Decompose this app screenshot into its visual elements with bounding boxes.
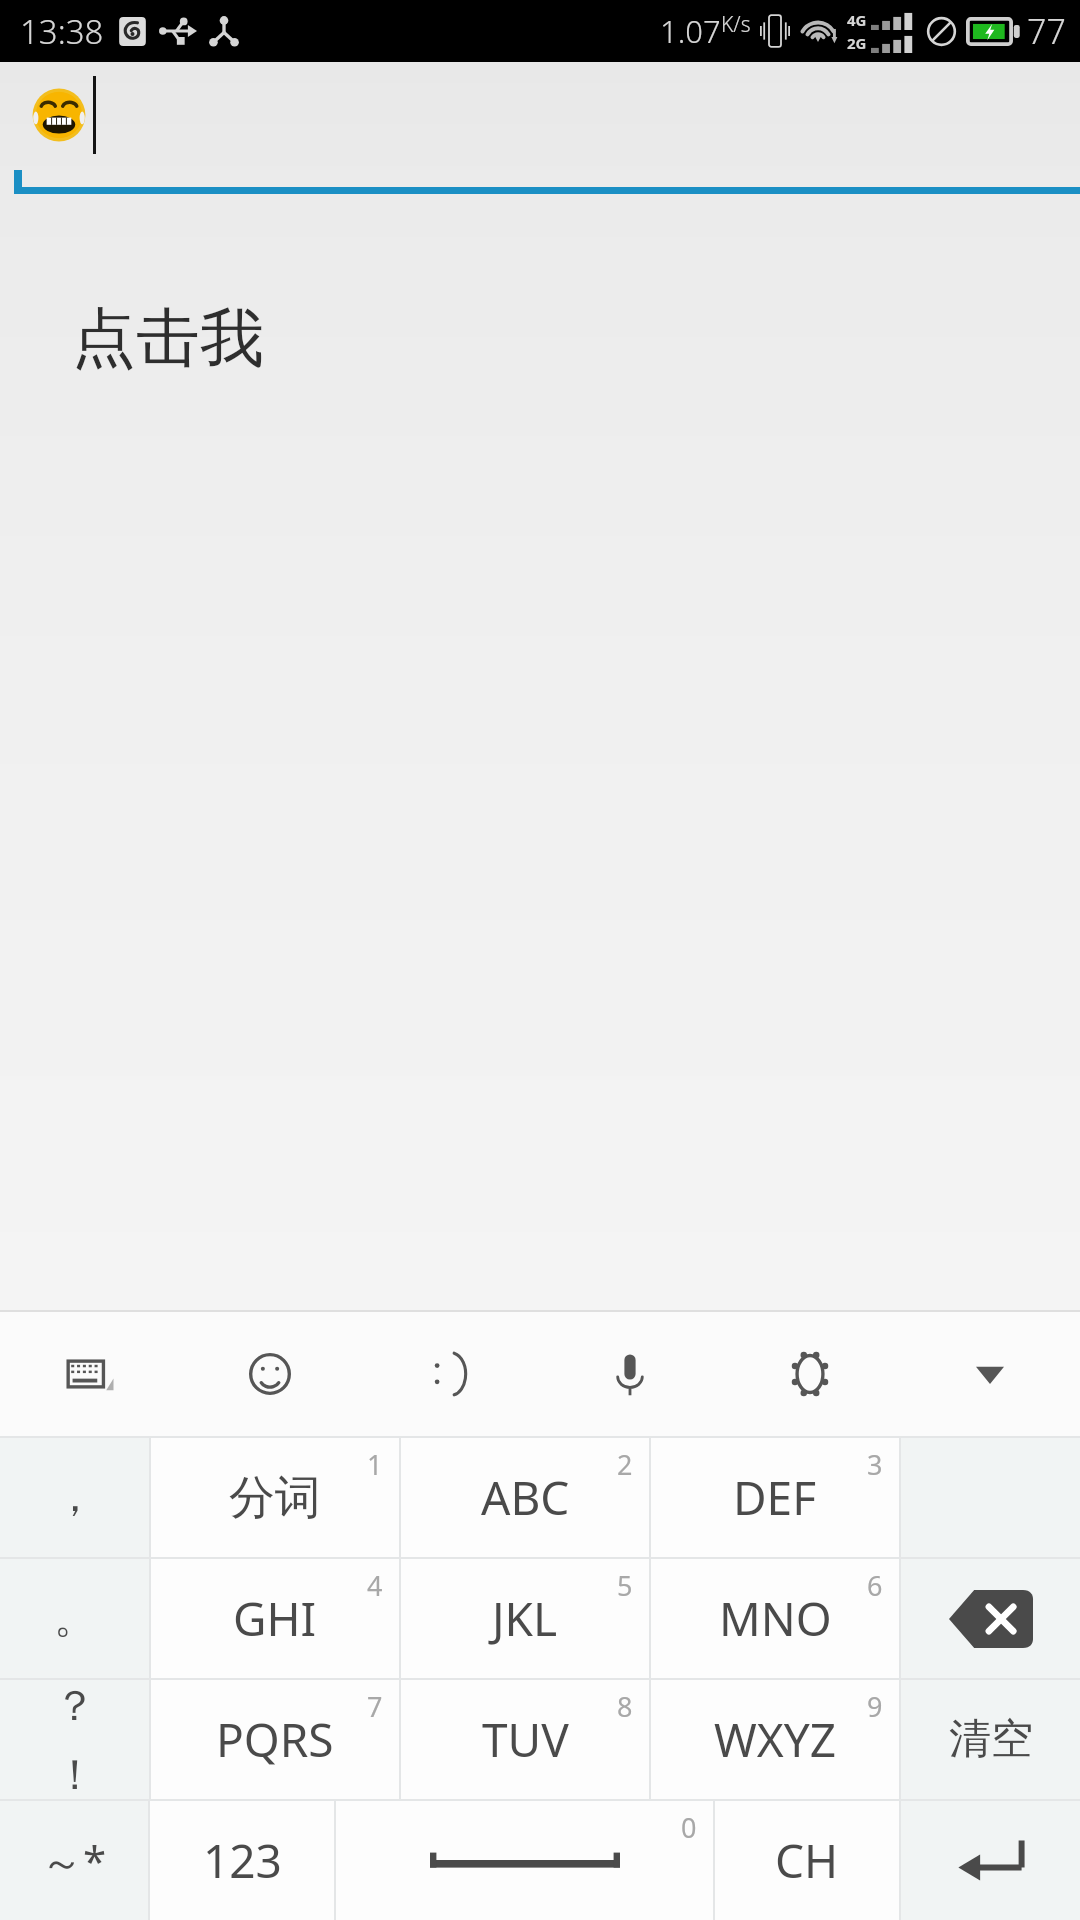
button[interactable]: Space — [336, 1801, 713, 1920]
staticText: GHI — [233, 1587, 317, 1650]
staticText: 1 — [367, 1446, 383, 1483]
button[interactable]: MNO — [651, 1559, 899, 1678]
staticText: PQRS — [216, 1708, 334, 1771]
staticText: 5 — [617, 1567, 633, 1604]
staticText: ， — [54, 1471, 96, 1524]
staticText: ～* — [41, 1832, 107, 1889]
staticText: DEF — [733, 1466, 817, 1529]
staticText: K/s — [721, 10, 751, 39]
staticText: 3 — [867, 1446, 883, 1483]
staticText: WXYZ — [714, 1708, 837, 1771]
button[interactable]: Emoji — [180, 1312, 360, 1436]
button[interactable] — [0, 62, 1080, 168]
staticText: CH — [775, 1829, 839, 1892]
button[interactable]: PQRS — [151, 1680, 399, 1799]
staticText: 13:38 — [20, 9, 104, 54]
staticText: 8 — [617, 1688, 633, 1725]
button[interactable]: Voice input — [540, 1312, 720, 1436]
button[interactable]: Enter — [901, 1801, 1080, 1920]
button[interactable]: Backspace — [901, 1559, 1080, 1678]
staticText: MNO — [719, 1587, 832, 1650]
button[interactable]: Hide keyboard — [900, 1312, 1080, 1436]
staticText: 0 — [681, 1809, 697, 1846]
staticText: 2G — [847, 33, 867, 53]
button[interactable]: Keyboard layout — [0, 1312, 180, 1436]
staticText: 分词 — [229, 1469, 321, 1527]
button[interactable]: WXYZ — [651, 1680, 899, 1799]
staticText: 9 — [867, 1688, 883, 1725]
button[interactable]: 。 — [0, 1559, 149, 1678]
button[interactable]: TUV — [401, 1680, 649, 1799]
staticText: ？ — [54, 1680, 96, 1733]
button[interactable]: CH — [715, 1801, 899, 1920]
button[interactable]: ABC — [401, 1438, 649, 1557]
staticText: 6 — [867, 1567, 883, 1604]
button[interactable]: Emoticons — [360, 1312, 540, 1436]
staticText: 123 — [203, 1829, 282, 1892]
staticText: 清空 — [949, 1713, 1033, 1766]
staticText: 77 — [1027, 8, 1066, 54]
button[interactable]: 分词 — [151, 1438, 399, 1557]
button[interactable]: GHI — [151, 1559, 399, 1678]
button[interactable]: DEF — [651, 1438, 899, 1557]
button[interactable]: JKL — [401, 1559, 649, 1678]
button[interactable]: 清空 — [901, 1680, 1080, 1799]
button[interactable]: Settings — [720, 1312, 900, 1436]
staticText: 。 — [54, 1592, 96, 1645]
staticText: JKL — [492, 1587, 558, 1650]
staticText: 7 — [367, 1688, 383, 1725]
staticText: 4G — [847, 10, 867, 30]
button[interactable]: ？ — [0, 1680, 149, 1799]
staticText: ABC — [481, 1466, 570, 1529]
staticText: ！ — [54, 1749, 96, 1799]
staticText: 2 — [617, 1446, 633, 1483]
button[interactable]: ， — [0, 1438, 149, 1557]
staticText: TUV — [482, 1708, 569, 1771]
button[interactable]: 点击我 — [72, 298, 264, 379]
staticText: 4 — [367, 1567, 383, 1604]
staticText: 1.07 — [660, 10, 721, 52]
button[interactable]: 123 — [150, 1801, 334, 1920]
button[interactable]: ～* — [0, 1801, 148, 1920]
